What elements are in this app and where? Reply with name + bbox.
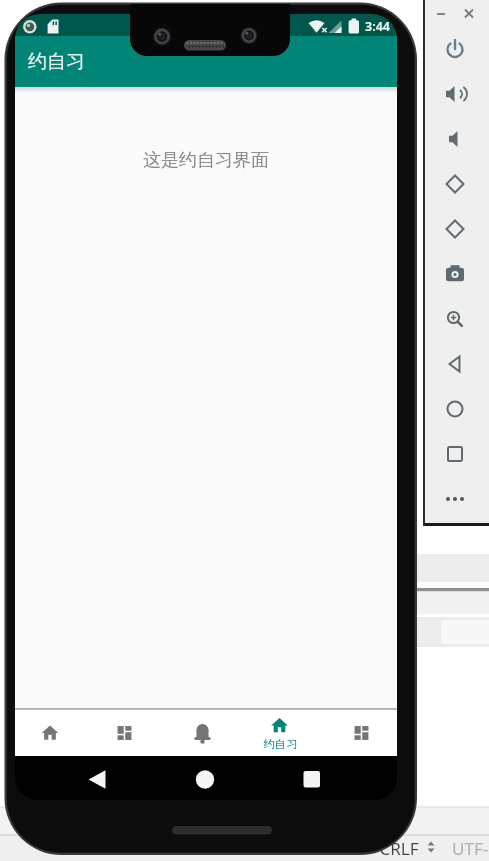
staticText: 约自习 <box>28 50 85 74</box>
button[interactable] <box>440 124 470 154</box>
button[interactable] <box>321 709 397 757</box>
button[interactable] <box>432 4 450 22</box>
button[interactable] <box>440 169 470 199</box>
button[interactable] <box>440 349 470 379</box>
button[interactable] <box>73 758 121 800</box>
button[interactable] <box>440 79 470 109</box>
button[interactable] <box>440 34 470 64</box>
staticText: 约自习 <box>263 737 298 751</box>
button[interactable] <box>440 484 470 514</box>
button[interactable] <box>181 758 229 800</box>
staticText: 3:44 <box>365 18 390 35</box>
staticText: 这是约自习界面 <box>143 149 269 172</box>
button[interactable] <box>288 758 336 800</box>
staticText: CRLF <box>379 837 419 856</box>
button[interactable] <box>440 394 470 424</box>
button[interactable] <box>244 709 320 757</box>
button[interactable] <box>15 709 91 757</box>
button[interactable] <box>460 4 478 22</box>
button[interactable] <box>440 439 470 469</box>
staticText: UTF-8 <box>452 837 489 856</box>
button[interactable] <box>440 259 470 289</box>
button[interactable] <box>440 214 470 244</box>
button[interactable] <box>91 709 167 757</box>
button[interactable] <box>168 709 244 757</box>
button[interactable] <box>440 304 470 334</box>
